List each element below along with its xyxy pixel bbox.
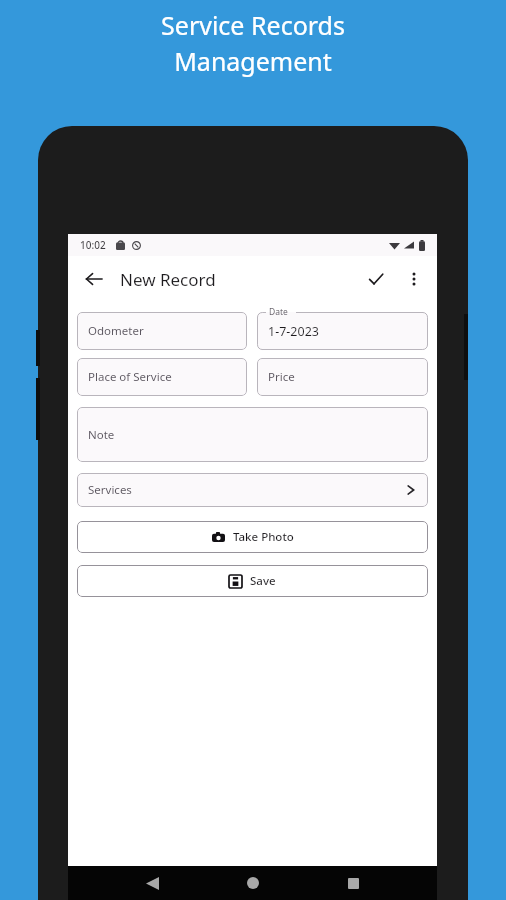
button[interactable]: Take Photo bbox=[77, 521, 428, 553]
staticText: Save bbox=[250, 573, 276, 589]
button[interactable]: Date bbox=[257, 306, 428, 350]
staticText: Management bbox=[174, 44, 332, 78]
button[interactable]: Navigate up bbox=[76, 261, 112, 297]
staticText: Odometer bbox=[88, 323, 144, 339]
button[interactable]: Price bbox=[257, 358, 428, 396]
button[interactable]: Save bbox=[77, 565, 428, 597]
staticText: Price bbox=[268, 369, 295, 385]
button[interactable]: Place of Service bbox=[77, 358, 247, 396]
staticText: Service Records bbox=[161, 8, 345, 42]
button[interactable]: Home bbox=[236, 866, 270, 900]
button[interactable]: More options bbox=[395, 260, 433, 298]
staticText: Services bbox=[88, 482, 132, 498]
staticText: 1-7-2023 bbox=[268, 323, 319, 340]
button[interactable]: Odometer bbox=[77, 312, 247, 350]
staticText: 10:02 bbox=[80, 238, 106, 252]
staticText: Date bbox=[269, 306, 288, 318]
button[interactable]: Recent apps bbox=[336, 866, 370, 900]
button[interactable]: Confirm bbox=[357, 260, 395, 298]
staticText: Note bbox=[88, 427, 115, 443]
staticText: New Record bbox=[120, 268, 216, 291]
button[interactable]: Services bbox=[77, 473, 428, 507]
button[interactable]: Note bbox=[77, 407, 428, 462]
staticText: Place of Service bbox=[88, 369, 172, 385]
button[interactable]: Back bbox=[135, 866, 169, 900]
staticText: Take Photo bbox=[233, 529, 294, 545]
